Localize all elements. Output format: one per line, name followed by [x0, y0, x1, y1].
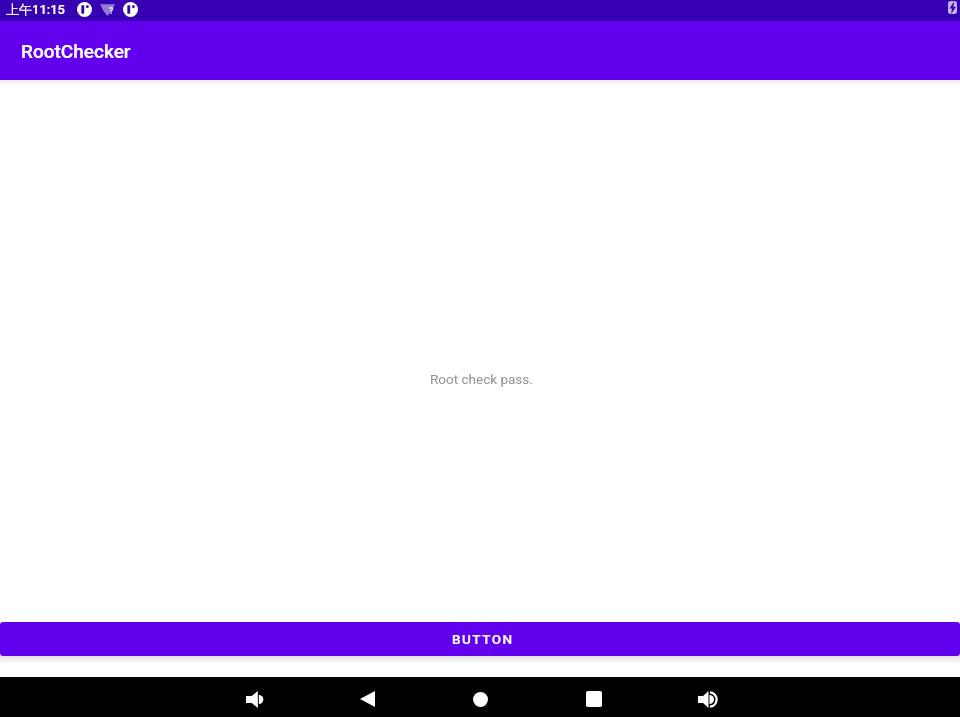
button[interactable]: Back: [311, 679, 424, 717]
button[interactable]: Recents: [537, 679, 650, 717]
staticText: 上午11:15: [6, 1, 65, 17]
button[interactable]: Home: [424, 679, 537, 717]
staticText: Root check pass.: [430, 371, 533, 387]
button[interactable]: Volume down: [198, 679, 311, 717]
staticText: ?: [109, 6, 114, 17]
staticText: RootChecker: [21, 40, 131, 62]
button[interactable]: Volume up: [650, 679, 763, 717]
staticText: BUTTON: [452, 631, 514, 647]
button[interactable]: BUTTON: [0, 622, 960, 656]
